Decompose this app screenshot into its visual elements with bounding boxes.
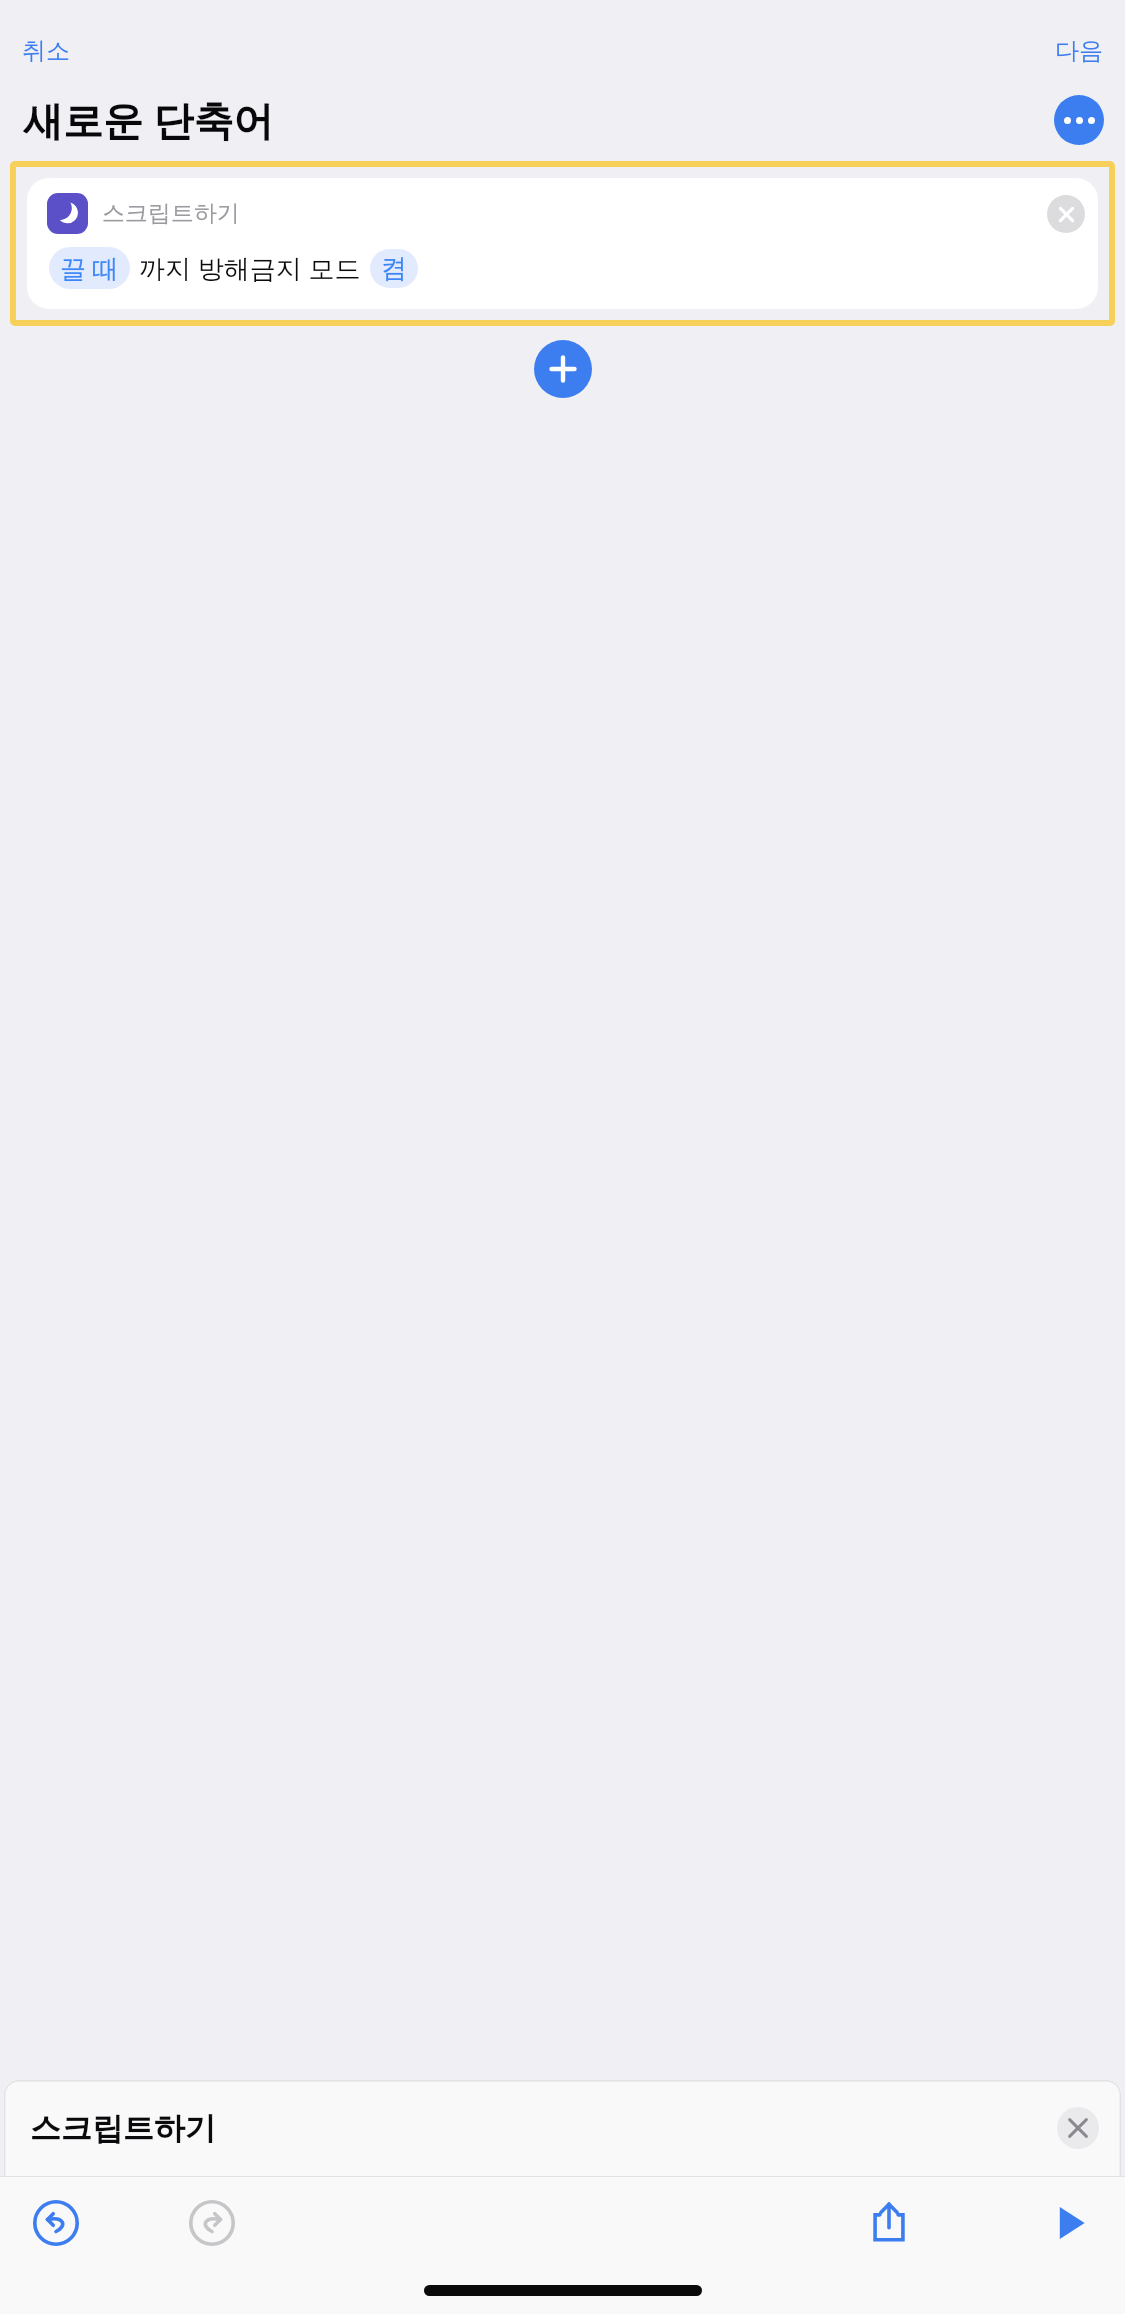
button[interactable]: Redo xyxy=(180,2191,244,2255)
staticText: 다음 xyxy=(1055,36,1103,66)
button[interactable]: Add action xyxy=(534,340,592,398)
button[interactable]: Close xyxy=(1057,2107,1099,2149)
button[interactable]: 끌 때 xyxy=(49,247,130,289)
button[interactable]: 스크립트하기 xyxy=(27,178,1098,309)
button[interactable]: 켬 xyxy=(370,249,418,288)
button[interactable]: Run xyxy=(1037,2191,1101,2255)
button[interactable]: Share xyxy=(857,2191,921,2255)
button[interactable]: 다음 xyxy=(1039,28,1125,74)
staticText: 끌 때 xyxy=(60,250,119,286)
button[interactable]: Undo xyxy=(24,2191,88,2255)
staticText: 켬 xyxy=(381,252,407,285)
staticText: 까지 방해금지 모드 xyxy=(139,250,361,286)
staticText: 취소 xyxy=(22,36,70,66)
button[interactable]: Remove action xyxy=(1047,195,1085,233)
button[interactable]: More options xyxy=(1054,95,1104,145)
staticText: 스크립트하기 xyxy=(102,199,240,228)
staticText: 스크립트하기 xyxy=(30,2109,216,2148)
button[interactable]: 취소 xyxy=(0,28,86,74)
staticText: 새로운 단축어 xyxy=(23,92,274,147)
